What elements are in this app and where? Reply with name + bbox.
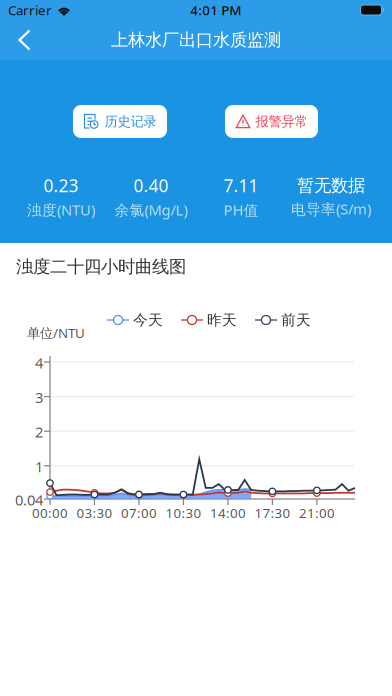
staticText: 3	[35, 388, 43, 407]
staticText: Carrier	[8, 1, 52, 19]
staticText: 21:00	[299, 504, 335, 522]
staticText: PH值	[223, 200, 258, 220]
staticText: 报警异常	[255, 113, 307, 130]
button[interactable]: Back	[0, 20, 48, 60]
staticText: 2	[35, 422, 43, 442]
staticText: 前天	[281, 311, 311, 329]
staticText: 17:30	[254, 504, 290, 522]
staticText: 浊度(NTU)	[27, 200, 95, 220]
staticText: 暂无数据	[297, 175, 365, 196]
staticText: 4:01 PM	[190, 1, 241, 19]
staticText: 07:00	[121, 504, 157, 522]
staticText: 1	[35, 457, 43, 476]
staticText: 0.40	[133, 174, 168, 197]
staticText: 10:30	[165, 504, 201, 522]
staticText: 14:00	[210, 504, 246, 522]
staticText: 上林水厂出口水质监测	[111, 29, 281, 51]
staticText: 7.11	[223, 174, 258, 197]
button[interactable]: 历史记录	[73, 105, 167, 138]
staticText: 00:00	[32, 504, 68, 522]
staticText: 余氯(Mg/L)	[114, 200, 187, 220]
staticText: 昨天	[207, 311, 237, 329]
staticText: 03:30	[76, 504, 112, 522]
staticText: 历史记录	[104, 113, 156, 130]
staticText: 单位/NTU	[27, 324, 85, 342]
staticText: 0.04	[15, 490, 43, 509]
staticText: 4	[35, 353, 43, 372]
staticText: 浊度二十四小时曲线图	[16, 256, 186, 277]
staticText: 电导率(S/m)	[291, 199, 371, 219]
button[interactable]: 报警异常	[225, 105, 318, 138]
staticText: 0.23	[43, 174, 78, 197]
staticText: 今天	[133, 311, 163, 329]
